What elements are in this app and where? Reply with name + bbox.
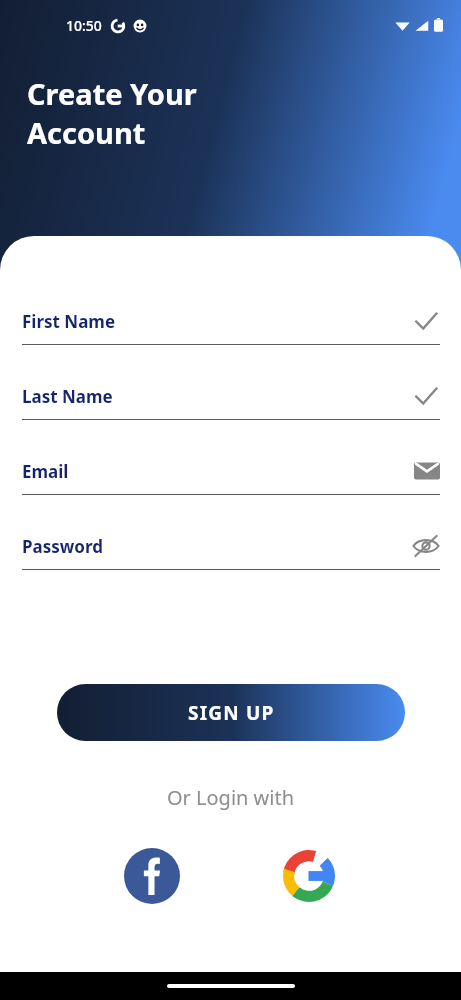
button[interactable]: Email bbox=[0, 448, 461, 523]
staticText: Password bbox=[22, 535, 103, 558]
button[interactable]: SIGN UP bbox=[57, 684, 405, 741]
other: Show password bbox=[412, 532, 440, 560]
button[interactable]: Login with Google bbox=[279, 846, 339, 906]
button[interactable]: Last Name bbox=[0, 373, 461, 448]
staticText: Or Login with bbox=[0, 784, 461, 811]
staticText: Account bbox=[27, 113, 146, 152]
staticText: First Name bbox=[22, 310, 116, 333]
staticText: SIGN UP bbox=[188, 700, 275, 726]
other: Valid bbox=[412, 382, 440, 410]
button[interactable]: Login with Facebook bbox=[122, 846, 182, 906]
other: Email bbox=[414, 458, 440, 484]
staticText: Email bbox=[22, 460, 69, 483]
staticText: 10:50 bbox=[66, 16, 102, 35]
staticText: Create Your bbox=[27, 74, 197, 113]
button[interactable]: First Name bbox=[0, 298, 461, 373]
staticText: Last Name bbox=[22, 385, 113, 408]
button[interactable]: Password bbox=[0, 523, 461, 598]
other: Valid bbox=[412, 307, 440, 335]
